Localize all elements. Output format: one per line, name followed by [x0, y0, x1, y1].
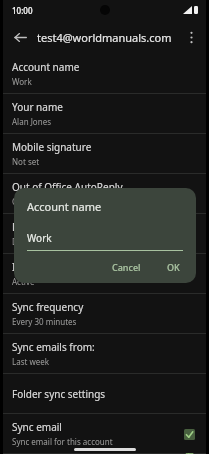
button[interactable]: More options — [176, 22, 206, 52]
staticText: Account name — [12, 60, 80, 74]
staticText: Folder sync settings — [12, 387, 106, 401]
staticText: Mobile signature — [12, 140, 92, 154]
staticText: Out of Office AutoReply — [12, 180, 123, 194]
staticText: Sync email — [12, 420, 62, 434]
staticText: Work — [27, 231, 52, 245]
button[interactable]: Inbox notifications — [3, 254, 206, 293]
button[interactable]: Your name — [3, 94, 206, 133]
button[interactable]: Back — [3, 20, 37, 54]
button[interactable]: Sync email — [181, 426, 197, 442]
button[interactable]: Default notification sound — [3, 214, 206, 253]
button[interactable]: Cancel — [104, 257, 149, 277]
staticText: Default — [12, 236, 40, 247]
staticText: Every 30 minutes — [12, 316, 77, 327]
button[interactable]: Out of Office AutoReply — [3, 174, 206, 213]
button[interactable]: OK — [159, 257, 188, 277]
staticText: Sync emails from: — [12, 340, 95, 354]
staticText: Active — [12, 276, 35, 287]
staticText: 10:00 — [12, 5, 33, 16]
staticText: Last week — [12, 356, 50, 367]
staticText: Your name — [12, 100, 63, 114]
staticText: test4@worldmanuals.com — [37, 30, 176, 45]
button[interactable]: Account name — [3, 54, 206, 93]
staticText: Sync frequency — [12, 300, 84, 314]
staticText: Inbox notifications — [12, 260, 100, 274]
staticText: Default notification sound — [12, 220, 135, 234]
button[interactable]: Mobile signature — [3, 134, 206, 173]
button[interactable]: Sync frequency — [3, 294, 206, 333]
staticText: Alan Jones — [12, 116, 51, 127]
staticText: Work — [12, 76, 32, 87]
staticText: OK — [167, 261, 180, 273]
staticText: Account name — [27, 199, 102, 214]
staticText: Not set — [12, 156, 40, 167]
staticText: Sync email for this account — [12, 436, 113, 447]
button[interactable]: Sync email — [3, 414, 206, 453]
staticText: Cancel — [112, 261, 141, 273]
staticText: Off — [12, 196, 24, 207]
button[interactable]: Folder sync settings — [3, 374, 206, 413]
button[interactable]: Sync emails from: — [3, 334, 206, 373]
